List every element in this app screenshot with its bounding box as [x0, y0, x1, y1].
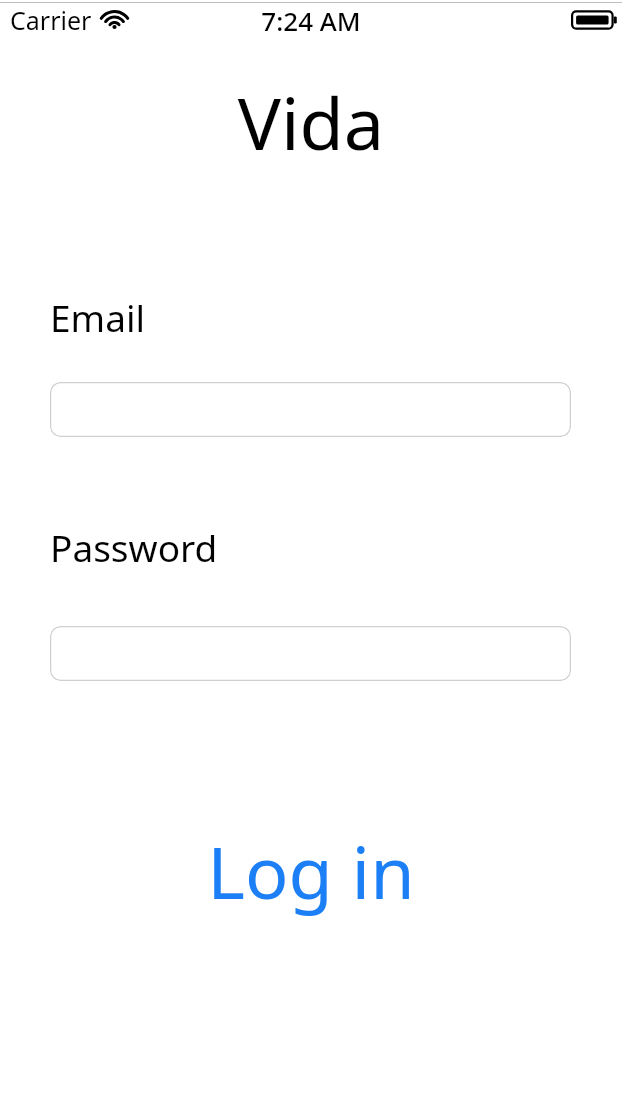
button[interactable]: Log in [0, 822, 622, 920]
staticText: Password [50, 522, 218, 572]
button[interactable]: Email input field [50, 382, 571, 437]
other: Wi-Fi signal [101, 10, 128, 30]
button[interactable]: Password input field [50, 626, 571, 681]
staticText: Email [50, 292, 146, 342]
other: Battery full [571, 7, 617, 33]
staticText: Vida [0, 73, 622, 171]
staticText: 7:24 AM [0, 3, 622, 38]
staticText: Log in [0, 822, 622, 920]
staticText: Carrier [10, 3, 92, 37]
